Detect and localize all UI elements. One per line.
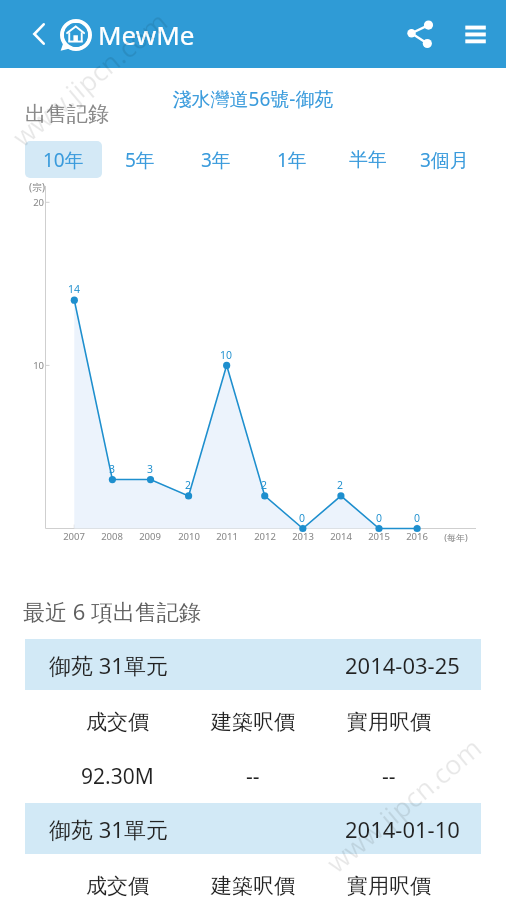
staticText: www.jipcn.com [4,3,175,155]
button[interactable]: Share [399,0,441,68]
staticText: 2009 [130,530,170,543]
staticText: 2014-01-10 [345,814,460,844]
button[interactable]: 10年 [25,141,102,178]
staticText: 1年 [277,147,307,173]
button[interactable]: 御苑 31單元 [25,639,481,690]
staticText: 2016 [397,530,437,543]
staticText: 3年 [201,147,231,173]
button[interactable]: 御苑 31單元 [25,803,481,854]
staticText: 5年 [125,147,155,173]
staticText: 2007 [54,530,94,543]
staticText: 成交價 [86,709,149,735]
staticText: 實用呎價 [347,873,431,899]
staticText: (宗) [29,180,45,194]
staticText: 20 [20,196,44,209]
staticText: 10 [211,348,241,362]
staticText: 建築呎價 [211,873,295,899]
button[interactable]: 3年 [178,141,254,178]
button[interactable]: Back [24,0,54,68]
staticText: 2 [173,478,203,492]
staticText: -- [382,762,396,791]
staticText: 實用呎價 [347,709,431,735]
staticText: 0 [364,511,394,525]
staticText: 最近 6 項出售記錄 [23,596,202,626]
button[interactable]: 1年 [254,141,330,178]
staticText: MewMe [98,17,195,52]
staticText: www.jipcn.com [318,729,489,881]
staticText: 御苑 31單元 [49,650,168,680]
button[interactable]: 半年 [330,141,406,178]
staticText: 14 [59,282,89,296]
staticText: -- [246,762,260,791]
staticText: 御苑 31單元 [49,814,168,844]
staticText: 2 [249,478,279,492]
staticText: 2010 [169,530,209,543]
button[interactable]: Menu [455,0,496,68]
button[interactable]: 5年 [102,141,178,178]
staticText: 半年 [349,148,387,172]
staticText: 2015 [359,530,399,543]
staticText: 2013 [283,530,323,543]
staticText: 3 [135,462,165,476]
staticText: 2 [325,478,355,492]
staticText: 淺水灣道56號-御苑 [0,86,506,112]
staticText: 92.30M [81,762,154,791]
staticText: 2014 [321,530,361,543]
staticText: 出售記錄 [25,101,109,127]
staticText: 3 [97,462,127,476]
staticText: 0 [402,511,432,525]
staticText: 成交價 [86,873,149,899]
staticText: 建築呎價 [211,709,295,735]
staticText: 10年 [43,147,84,173]
staticText: 0 [287,511,317,525]
staticText: (每年) [431,531,481,543]
staticText: 2014-03-25 [345,650,460,680]
staticText: 2008 [92,530,132,543]
staticText: 3個月 [420,147,469,173]
button[interactable]: 3個月 [406,141,482,178]
staticText: 2011 [207,530,247,543]
staticText: 10 [20,359,44,372]
staticText: 2012 [245,530,285,543]
